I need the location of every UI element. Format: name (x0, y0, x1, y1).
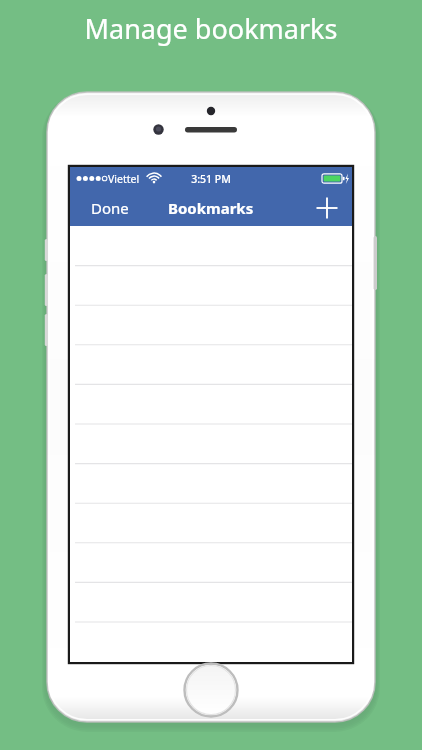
staticText: Bookmarks (168, 198, 254, 218)
button[interactable]: Add bookmark (304, 190, 350, 226)
staticText: Manage bookmarks (0, 10, 422, 47)
staticText: Viettel (108, 172, 140, 186)
button[interactable]: Bookmark row 4 (71, 345, 351, 385)
staticText: Done (91, 198, 129, 218)
button[interactable]: Bookmark row 7 (71, 464, 351, 504)
button[interactable]: Bookmark row 6 (71, 424, 351, 464)
button[interactable]: Bookmark row 10 (71, 582, 351, 622)
button[interactable]: Done (72, 190, 148, 226)
button[interactable]: Bookmark row 3 (71, 305, 351, 345)
button[interactable]: Bookmark row 5 (71, 384, 351, 424)
button[interactable]: Bookmark row 9 (71, 543, 351, 583)
staticText: 3:51 PM (70, 172, 352, 186)
button[interactable]: Bookmark row 8 (71, 503, 351, 543)
button[interactable]: Home (185, 664, 237, 716)
button[interactable]: Bookmark row 1 (71, 226, 351, 266)
button[interactable]: Bookmark row 2 (71, 266, 351, 306)
